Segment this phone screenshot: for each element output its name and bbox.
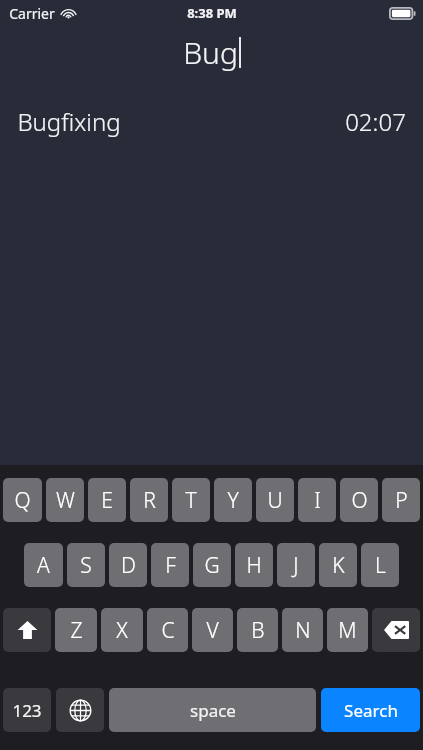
button[interactable]: Bugfixing: [0, 98, 423, 144]
button[interactable]: space: [109, 688, 316, 732]
button[interactable]: Q: [3, 478, 42, 522]
button[interactable]: I: [298, 478, 336, 522]
button[interactable]: Shift: [3, 608, 51, 652]
button[interactable]: U: [256, 478, 294, 522]
staticText: L: [375, 551, 386, 580]
button[interactable]: C: [147, 608, 188, 652]
button[interactable]: H: [235, 543, 273, 587]
staticText: W: [56, 486, 75, 515]
button[interactable]: Backspace: [372, 608, 420, 652]
button[interactable]: A: [24, 543, 63, 587]
button[interactable]: D: [109, 543, 147, 587]
staticText: Bugfixing: [17, 105, 121, 138]
staticText: F: [165, 551, 176, 580]
button[interactable]: L: [361, 543, 399, 587]
staticText: Z: [70, 616, 83, 645]
button[interactable]: V: [192, 608, 233, 652]
staticText: Q: [14, 486, 31, 515]
staticText: M: [338, 616, 357, 645]
button[interactable]: N: [282, 608, 323, 652]
staticText: N: [295, 616, 311, 645]
button[interactable]: X: [101, 608, 143, 652]
button[interactable]: B: [237, 608, 278, 652]
staticText: O: [351, 486, 368, 515]
button[interactable]: Y: [214, 478, 252, 522]
staticText: space: [190, 699, 236, 722]
staticText: V: [206, 616, 219, 645]
staticText: 8:38 PM: [187, 4, 237, 22]
staticText: K: [332, 551, 345, 580]
button[interactable]: 123: [3, 688, 51, 732]
staticText: T: [185, 486, 197, 515]
button[interactable]: E: [88, 478, 126, 522]
button[interactable]: Z: [55, 608, 97, 652]
button[interactable]: S: [67, 543, 105, 587]
button[interactable]: R: [130, 478, 168, 522]
button[interactable]: T: [172, 478, 210, 522]
button[interactable]: M: [327, 608, 368, 652]
staticText: 02:07: [345, 105, 406, 138]
button[interactable]: P: [382, 478, 420, 522]
staticText: U: [267, 486, 283, 515]
staticText: Carrier: [9, 4, 55, 23]
staticText: J: [293, 551, 299, 580]
staticText: C: [161, 616, 175, 645]
staticText: R: [143, 486, 156, 515]
staticText: D: [121, 551, 136, 580]
staticText: H: [246, 551, 262, 580]
staticText: Y: [227, 486, 239, 515]
staticText: P: [395, 486, 408, 515]
staticText: E: [101, 486, 113, 515]
staticText: A: [37, 551, 50, 580]
staticText: G: [204, 551, 220, 580]
button[interactable]: Bug: [0, 26, 423, 78]
button[interactable]: F: [151, 543, 189, 587]
staticText: B: [251, 616, 265, 645]
button[interactable]: W: [46, 478, 84, 522]
staticText: Bug: [183, 32, 238, 73]
button[interactable]: Search: [321, 688, 420, 732]
staticText: S: [80, 551, 92, 580]
staticText: 123: [12, 699, 42, 722]
button[interactable]: J: [277, 543, 315, 587]
staticText: I: [314, 486, 321, 515]
staticText: Search: [344, 699, 398, 722]
button[interactable]: K: [319, 543, 357, 587]
button[interactable]: Switch keyboard language: [56, 688, 104, 732]
button[interactable]: G: [193, 543, 231, 587]
staticText: X: [116, 616, 128, 645]
button[interactable]: O: [340, 478, 378, 522]
